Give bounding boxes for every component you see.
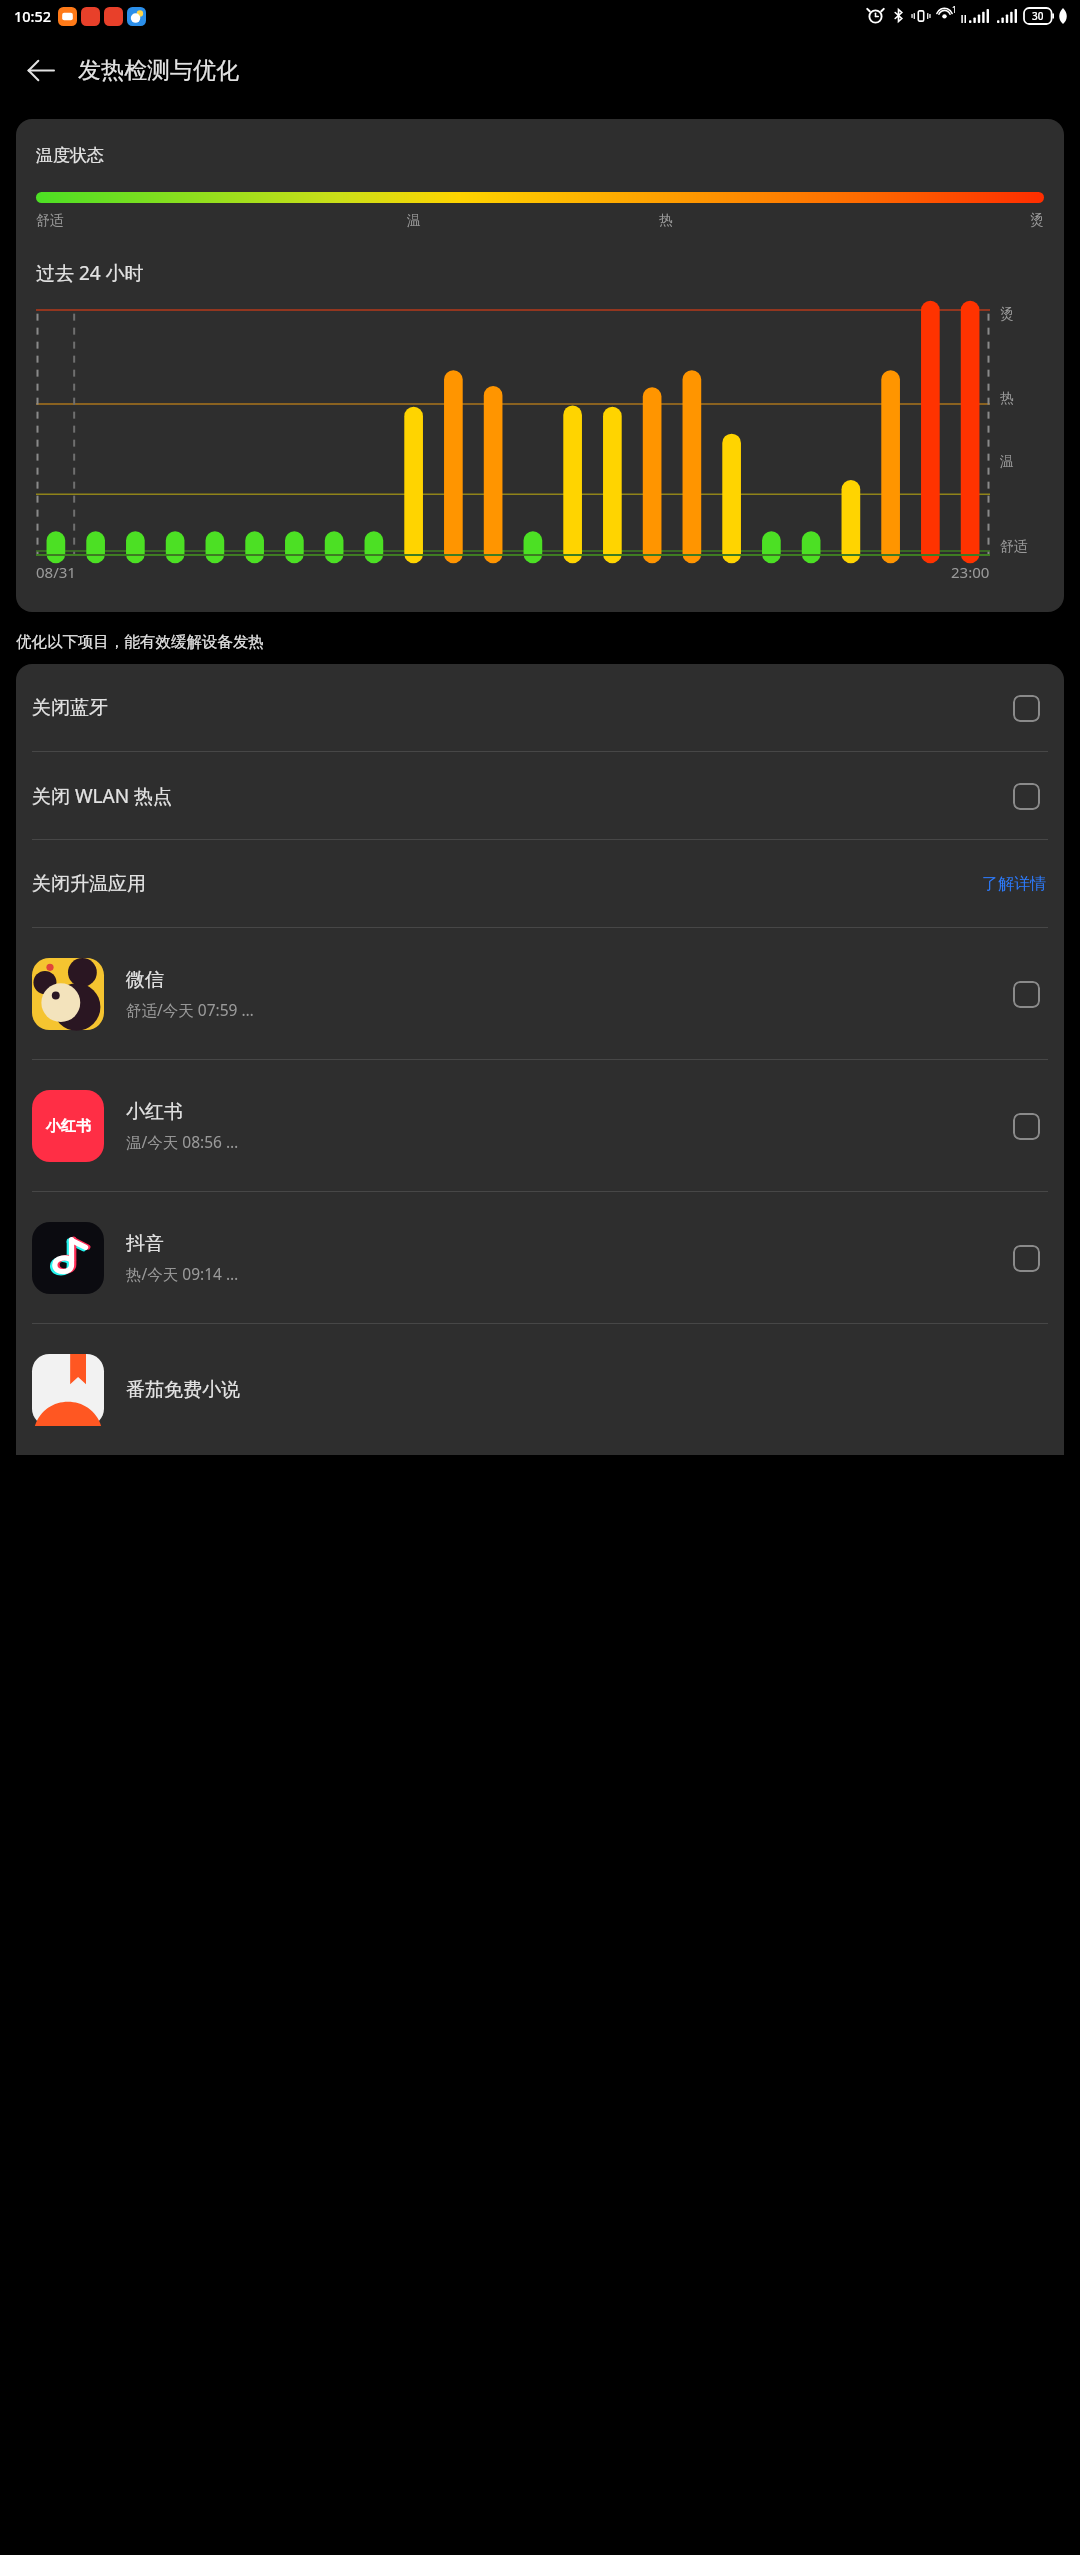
staticText: 热 (540, 212, 792, 230)
staticText: 关闭升温应用 (32, 872, 146, 896)
staticText: 烫 (1000, 306, 1014, 324)
button[interactable]: 微信 (16, 928, 1064, 1059)
button[interactable]: 番茄免费小说 (16, 1324, 1064, 1455)
staticText: 关闭蓝牙 (32, 696, 108, 720)
staticText: 舒适/今天 07:59 … (126, 999, 254, 1020)
button[interactable]: 关闭蓝牙 (16, 664, 1064, 751)
button[interactable]: 小红书 (16, 1060, 1064, 1191)
staticText: 小红书 (46, 1117, 91, 1136)
staticText: 温 (288, 212, 540, 230)
staticText: 微信 (126, 968, 164, 992)
staticText: 30 (1032, 9, 1044, 23)
staticText: 抖音 (126, 1232, 164, 1256)
staticText: 温度状态 (36, 145, 104, 166)
staticText: 10:52 (14, 6, 52, 26)
staticText: 热 (1000, 390, 1014, 408)
staticText: 了解详情 (982, 874, 1046, 894)
staticText: 发热检测与优化 (78, 56, 239, 85)
button[interactable]: Toggle (1004, 1236, 1048, 1280)
staticText: 烫 (792, 212, 1044, 230)
button[interactable]: Back (14, 44, 66, 96)
button[interactable]: Toggle (1004, 774, 1048, 818)
staticText: 过去 24 小时 (36, 260, 144, 286)
staticText: 番茄免费小说 (126, 1378, 240, 1402)
button[interactable]: Toggle (1004, 1104, 1048, 1148)
staticText: 热/今天 09:14 … (126, 1263, 239, 1284)
staticText: 小红书 (126, 1100, 183, 1124)
button[interactable]: 关闭升温应用 (16, 840, 1064, 927)
staticText: 温 (1000, 453, 1014, 471)
button[interactable]: Toggle (1004, 972, 1048, 1016)
button[interactable]: 抖音 (16, 1192, 1064, 1323)
staticText: 23:00 (951, 562, 990, 582)
button[interactable]: 关闭 WLAN 热点 (16, 752, 1064, 839)
button[interactable]: 了解详情 (980, 868, 1048, 900)
staticText: 舒适 (36, 212, 288, 230)
staticText: 08/31 (36, 562, 76, 582)
button[interactable]: Toggle (1004, 686, 1048, 730)
staticText: 优化以下项目，能有效缓解设备发热 (16, 632, 264, 652)
staticText: 舒适 (1000, 538, 1028, 556)
staticText: 1 (952, 4, 957, 15)
staticText: 温/今天 08:56 … (126, 1131, 239, 1152)
button[interactable]: 温度状态 (16, 119, 1064, 612)
staticText: 关闭 WLAN 热点 (32, 783, 173, 809)
